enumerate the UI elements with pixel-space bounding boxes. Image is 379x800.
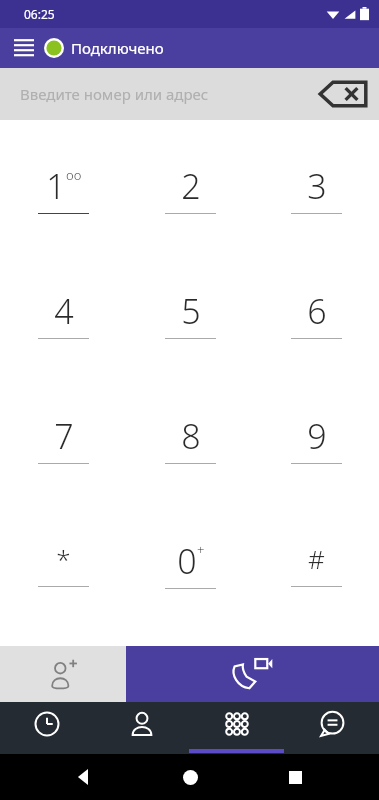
staticText: 06:25 xyxy=(24,6,55,22)
button[interactable]: 3 xyxy=(253,126,379,251)
button[interactable]: 4 xyxy=(0,251,127,376)
button[interactable]: 8 xyxy=(127,376,253,501)
staticText: 0 xyxy=(177,538,197,584)
staticText: # xyxy=(308,541,325,576)
button[interactable]: Recents xyxy=(273,755,317,799)
staticText: 9 xyxy=(307,413,327,459)
button[interactable]: Backspace xyxy=(315,74,371,114)
button[interactable]: 9 xyxy=(253,376,379,501)
button[interactable]: 1 xyxy=(0,126,127,251)
button[interactable]: Add contact xyxy=(0,646,126,702)
staticText: * xyxy=(56,541,71,576)
staticText: Подключено xyxy=(71,38,164,58)
button[interactable]: 7 xyxy=(0,376,127,501)
staticText: 7 xyxy=(54,413,74,459)
button[interactable]: Dialpad xyxy=(189,702,284,754)
button[interactable]: Back xyxy=(62,755,106,799)
staticText: 8 xyxy=(181,413,201,459)
staticText: Введите номер или адрес xyxy=(20,84,209,104)
button[interactable]: 6 xyxy=(253,251,379,376)
staticText: oo xyxy=(66,166,82,184)
button[interactable]: Home xyxy=(168,755,212,799)
button[interactable]: Video call xyxy=(126,646,379,702)
staticText: 1 xyxy=(46,163,66,209)
button[interactable]: Contacts xyxy=(94,702,189,754)
button[interactable]: * xyxy=(0,501,127,626)
button[interactable]: 5 xyxy=(127,251,253,376)
staticText: + xyxy=(197,541,205,559)
button[interactable]: 2 xyxy=(127,126,253,251)
button[interactable]: 0 xyxy=(127,501,253,626)
button[interactable]: Chats xyxy=(284,702,379,754)
staticText: 4 xyxy=(54,288,74,334)
staticText: 2 xyxy=(181,163,201,209)
staticText: 6 xyxy=(307,288,327,334)
staticText: 5 xyxy=(181,288,201,334)
button[interactable]: Menu xyxy=(6,30,42,66)
button[interactable]: # xyxy=(253,501,379,626)
button[interactable]: Recent xyxy=(0,702,94,754)
staticText: 3 xyxy=(307,163,327,209)
